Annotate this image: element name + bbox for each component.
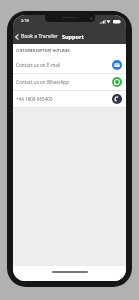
button[interactable]: Contact us on WhatsApp (13, 74, 126, 90)
button[interactable]: Book a Transfer (15, 33, 58, 40)
button[interactable]: +44 1908 665400 (13, 91, 126, 107)
staticText: Book a Transfer (21, 33, 58, 40)
staticText: Support (62, 33, 84, 40)
staticText: CUSTOMER SUPPORT HOTLINES (16, 48, 70, 53)
staticText: 2:18 (21, 18, 29, 23)
staticText: +44 1908 665400 (16, 96, 53, 102)
staticText: Contact us on WhatsApp (16, 79, 69, 85)
staticText: Contact us on E-mail (16, 62, 61, 68)
button[interactable]: Contact us on E-mail (13, 57, 126, 73)
